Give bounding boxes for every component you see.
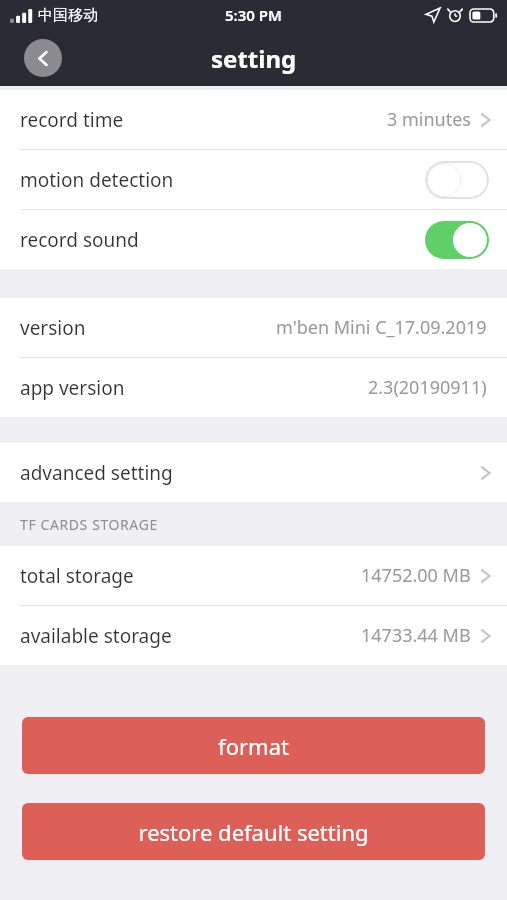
- staticText: 14733.44 MB: [361, 623, 471, 648]
- button[interactable]: On: [425, 221, 489, 259]
- button[interactable]: Back: [24, 39, 62, 77]
- staticText: 14752.00 MB: [361, 563, 471, 588]
- staticText: total storage: [20, 563, 134, 589]
- staticText: motion detection: [20, 167, 174, 193]
- button[interactable]: version: [0, 298, 507, 357]
- staticText: setting: [211, 42, 297, 75]
- button[interactable]: restore default setting: [22, 803, 485, 860]
- button[interactable]: advanced setting: [0, 443, 507, 502]
- button[interactable]: record time: [0, 90, 507, 149]
- staticText: m'ben Mini C_17.09.2019: [276, 315, 487, 340]
- button[interactable]: total storage: [0, 546, 507, 605]
- staticText: app version: [20, 375, 125, 401]
- staticText: record time: [20, 107, 124, 133]
- staticText: version: [20, 315, 86, 341]
- button[interactable]: Off: [425, 161, 489, 199]
- staticText: available storage: [20, 623, 172, 649]
- staticText: 中国移动: [38, 6, 98, 25]
- staticText: advanced setting: [20, 460, 173, 486]
- staticText: TF CARDS STORAGE: [20, 515, 158, 534]
- button[interactable]: available storage: [0, 606, 507, 665]
- staticText: record sound: [20, 227, 139, 253]
- staticText: 2.3(20190911): [368, 375, 487, 400]
- button[interactable]: record sound: [0, 210, 507, 269]
- staticText: 5:30 PM: [225, 5, 282, 25]
- button[interactable]: motion detection: [0, 150, 507, 209]
- staticText: restore default setting: [138, 817, 369, 847]
- button[interactable]: app version: [0, 358, 507, 417]
- staticText: 3 minutes: [387, 107, 471, 132]
- button[interactable]: format: [22, 717, 485, 774]
- staticText: format: [218, 731, 289, 761]
